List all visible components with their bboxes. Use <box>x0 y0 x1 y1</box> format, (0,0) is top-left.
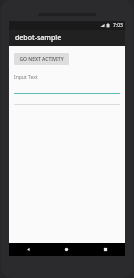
button[interactable]: Home <box>47 243 86 256</box>
staticText: GO NEXT ACTIVITY <box>19 56 64 63</box>
button[interactable]: Recent apps <box>86 243 125 256</box>
button[interactable]: Input Text <box>14 74 120 94</box>
staticText: Input Text <box>14 74 38 81</box>
staticText: 7:03 <box>113 22 123 29</box>
staticText: debot-sample <box>15 33 62 43</box>
button[interactable]: GO NEXT ACTIVITY <box>14 53 69 65</box>
button[interactable]: Back <box>9 243 47 256</box>
